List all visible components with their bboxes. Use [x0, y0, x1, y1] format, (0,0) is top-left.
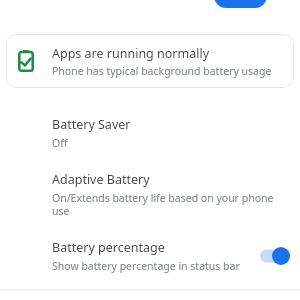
staticText: Adaptive Battery — [52, 171, 150, 188]
staticText: Phone has typical background battery usa… — [52, 64, 272, 78]
button[interactable]: Battery healthy — [6, 34, 294, 88]
staticText: Show battery percentage in status bar — [52, 259, 240, 273]
staticText: Off — [52, 136, 68, 150]
button[interactable]: Action button — [214, 0, 267, 8]
other: Battery healthy — [18, 50, 34, 72]
staticText: On/Extends battery life based on your ph… — [52, 191, 282, 218]
button[interactable]: Adaptive Battery — [0, 160, 300, 228]
staticText: Battery percentage — [52, 239, 165, 256]
staticText: Apps are running normally — [52, 45, 210, 62]
button[interactable]: Battery percentage toggle, on — [258, 245, 292, 267]
button[interactable]: Battery Saver — [0, 105, 300, 160]
button[interactable]: Battery percentage — [0, 228, 300, 283]
staticText: Battery Saver — [52, 116, 131, 133]
